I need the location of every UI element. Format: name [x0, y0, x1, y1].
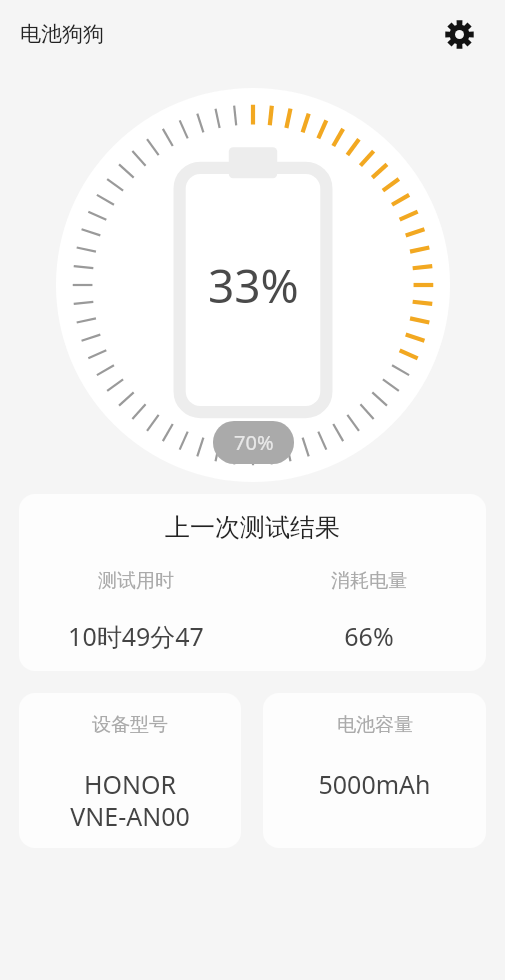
- staticText: 10时49分47: [68, 619, 204, 653]
- staticText: 上一次测试结果: [19, 512, 486, 543]
- staticText: 测试用时: [98, 569, 174, 593]
- staticText: 消耗电量: [331, 569, 407, 593]
- staticText: 电池容量: [337, 713, 413, 737]
- staticText: 70%: [234, 429, 274, 456]
- staticText: 5000mAh: [318, 767, 431, 801]
- staticText: 电池狗狗: [20, 21, 104, 47]
- staticText: 33%: [208, 254, 299, 317]
- staticText: 设备型号: [92, 713, 168, 737]
- button[interactable]: 上一次测试结果: [19, 494, 486, 671]
- button[interactable]: Settings: [437, 12, 481, 56]
- button[interactable]: 电池容量: [263, 693, 486, 848]
- staticText: HONOR VNE-AN00: [70, 767, 190, 833]
- staticText: 66%: [344, 619, 394, 653]
- button[interactable]: 70%: [213, 421, 294, 464]
- button[interactable]: 设备型号: [19, 693, 241, 848]
